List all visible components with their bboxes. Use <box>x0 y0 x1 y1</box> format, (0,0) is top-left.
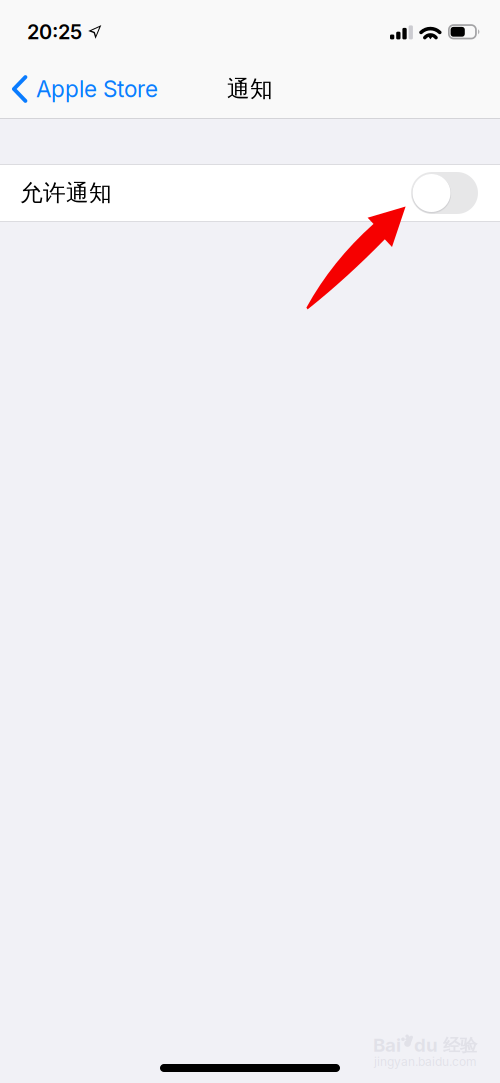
staticText: 20:25 <box>27 20 82 44</box>
staticText: Bai <box>373 1034 401 1056</box>
staticText: 经验 <box>438 1034 477 1056</box>
button[interactable]: Apple Store <box>0 65 168 113</box>
staticText: 允许通知 <box>20 179 112 207</box>
staticText: du <box>414 1034 438 1056</box>
button[interactable]: 允许通知 <box>0 165 500 221</box>
staticText: Apple Store <box>36 75 158 103</box>
staticText: 通知 <box>227 75 273 103</box>
staticText: jingyan.baidu.com <box>374 1054 477 1069</box>
